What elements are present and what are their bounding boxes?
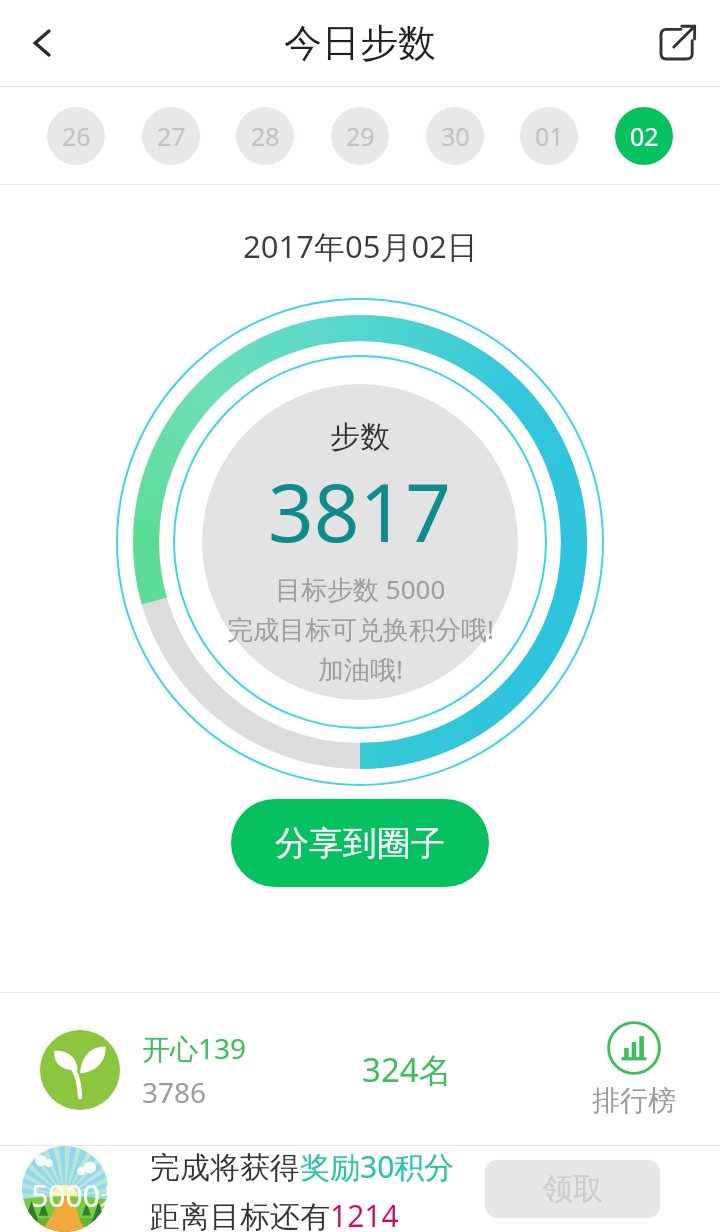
button[interactable]: 30 <box>426 107 484 165</box>
staticText: 今日步数 <box>284 19 436 67</box>
staticText: 30 <box>441 119 470 153</box>
staticText: 分享到圈子 <box>275 822 445 865</box>
button[interactable]: 27 <box>142 107 200 165</box>
staticText: 2017年05月02日 <box>243 225 478 267</box>
button[interactable]: Share <box>634 0 720 86</box>
staticText: 5000步 <box>31 1175 130 1216</box>
staticText: 目标步数 5000 <box>275 571 446 607</box>
staticText: 领取 <box>543 1170 603 1208</box>
button[interactable]: 开心139 <box>40 1029 247 1111</box>
staticText: 完成将获得奖励30积分 <box>150 1146 455 1187</box>
staticText: 324名 <box>362 1047 452 1092</box>
staticText: 加油哦! <box>318 651 403 687</box>
staticText: 27 <box>157 119 186 153</box>
button[interactable]: 29 <box>331 107 389 165</box>
staticText: 开心139 <box>142 1029 247 1067</box>
button[interactable]: Back <box>0 0 86 86</box>
staticText: 01 <box>535 119 564 153</box>
staticText: 26 <box>62 119 91 153</box>
staticText: 29 <box>346 119 375 153</box>
button[interactable]: 01 <box>520 107 578 165</box>
staticText: 排行榜 <box>592 1083 676 1118</box>
button[interactable]: 排行榜 <box>584 1021 684 1118</box>
button[interactable]: 领取 <box>485 1160 660 1218</box>
button[interactable]: 分享到圈子 <box>231 799 489 887</box>
button[interactable]: 26 <box>47 107 105 165</box>
staticText: 02 <box>630 119 659 153</box>
staticText: 距离目标还有1214 <box>150 1195 399 1232</box>
staticText: 3786 <box>142 1073 207 1111</box>
button[interactable]: 02 <box>615 107 673 165</box>
staticText: 完成目标可兑换积分哦! <box>227 611 494 647</box>
staticText: 3817 <box>268 456 452 565</box>
staticText: 28 <box>251 119 280 153</box>
button[interactable]: 28 <box>236 107 294 165</box>
staticText: 步数 <box>330 418 390 456</box>
